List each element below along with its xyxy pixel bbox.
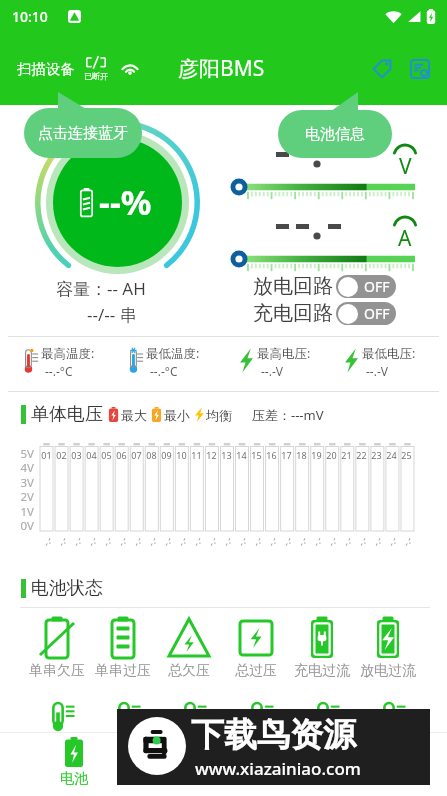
- button[interactable]: 高温保护: [24, 698, 97, 750]
- staticText: 低温保护: [101, 738, 153, 754]
- staticText: 放电过流: [360, 662, 416, 680]
- staticText: 彦阳BMS: [178, 54, 265, 83]
- staticText: 17: [279, 449, 294, 461]
- button[interactable]: 总过压: [223, 613, 289, 679]
- staticText: 1V: [10, 504, 34, 520]
- staticText: -.-: [38, 533, 56, 549]
- staticText: --.-°C: [150, 363, 178, 379]
- staticText: 10:10: [12, 7, 48, 26]
- staticText: 10: [174, 449, 189, 461]
- staticText: 18: [294, 449, 309, 461]
- staticText: -.-: [98, 533, 116, 549]
- staticText: -.-: [218, 533, 236, 549]
- staticText: 最低温度:: [146, 345, 200, 362]
- staticText: V: [399, 152, 412, 181]
- button[interactable]: 芯片错误: [223, 698, 296, 750]
- staticText: 总欠压: [168, 662, 210, 680]
- button[interactable]: 短路保护: [156, 698, 229, 750]
- staticText: 14: [234, 449, 249, 461]
- staticText: -.-: [203, 533, 221, 549]
- staticText: --.-°C: [45, 363, 73, 379]
- staticText: 已断开: [84, 71, 108, 81]
- staticText: -.-: [83, 533, 101, 549]
- staticText: 扫描设备: [17, 60, 75, 78]
- staticText: 芯片错误: [234, 738, 286, 754]
- staticText: 2V: [10, 489, 34, 505]
- staticText: -.-: [143, 533, 161, 549]
- staticText: 02: [54, 449, 69, 461]
- staticText: 09: [159, 449, 174, 461]
- button[interactable]: 扫描设备: [17, 56, 140, 81]
- button[interactable]: 报告: [403, 52, 437, 86]
- button[interactable]: 充电过流: [289, 613, 355, 679]
- staticText: -.-: [368, 533, 386, 549]
- staticText: 21: [339, 449, 354, 461]
- staticText: 电池状态: [31, 577, 103, 600]
- staticText: -.-: [383, 533, 401, 549]
- staticText: 25: [399, 449, 414, 461]
- staticText: 12: [204, 449, 219, 461]
- staticText: 高温保护: [35, 738, 87, 754]
- staticText: 19: [309, 449, 324, 461]
- staticText: 电池: [60, 770, 88, 788]
- button[interactable]: 电池信息: [278, 110, 392, 158]
- button[interactable]: 点击连接蓝牙: [24, 108, 142, 158]
- button[interactable]: 充电回路: [253, 301, 396, 326]
- staticText: -.-: [293, 533, 311, 549]
- staticText: www.xiazainiao.com: [195, 757, 361, 780]
- staticText: -.-: [323, 533, 341, 549]
- staticText: -.-: [128, 533, 146, 549]
- button[interactable]: 总欠压: [156, 613, 222, 679]
- staticText: 最大: [121, 407, 147, 423]
- staticText: 最高电压:: [257, 345, 311, 362]
- staticText: --/-- 串: [87, 303, 137, 326]
- staticText: 4V: [10, 460, 34, 476]
- staticText: -.-: [68, 533, 86, 549]
- staticText: --.-V: [261, 363, 284, 379]
- staticText: 5V: [10, 446, 34, 462]
- staticText: 容量：-- AH: [56, 277, 146, 300]
- staticText: 05: [99, 449, 114, 461]
- staticText: 总过压: [235, 662, 277, 680]
- staticText: -.-: [158, 533, 176, 549]
- staticText: 3V: [10, 475, 34, 491]
- staticText: 最高温度:: [41, 345, 95, 362]
- staticText: 单串欠压: [29, 662, 85, 680]
- staticText: 均衡: [206, 407, 232, 423]
- staticText: OFF: [364, 304, 390, 323]
- staticText: -.-: [113, 533, 131, 549]
- staticText: -.-: [188, 533, 206, 549]
- staticText: 11: [189, 449, 204, 461]
- staticText: 03: [69, 449, 84, 461]
- staticText: 点击连接蓝牙: [38, 124, 128, 143]
- staticText: -.-: [398, 533, 416, 549]
- staticText: 单串过压: [95, 662, 151, 680]
- button[interactable]: 单串过压: [90, 613, 156, 679]
- staticText: -.-: [308, 533, 326, 549]
- button[interactable]: 放电过流: [355, 613, 421, 679]
- staticText: -.-: [263, 533, 281, 549]
- button[interactable]: 互锁中断: [289, 698, 362, 750]
- staticText: --%: [99, 179, 152, 225]
- staticText: -.-: [353, 533, 371, 549]
- staticText: 08: [144, 449, 159, 461]
- staticText: 07: [129, 449, 144, 461]
- button[interactable]: 电池: [37, 737, 111, 788]
- staticText: 最小: [164, 407, 190, 423]
- staticText: --.-V: [366, 363, 389, 379]
- staticText: 充电过流: [294, 662, 350, 680]
- button[interactable]: 单串欠压: [24, 613, 90, 679]
- staticText: 充电回路: [253, 301, 333, 326]
- button[interactable]: 充电异常: [355, 698, 428, 750]
- staticText: 23: [369, 449, 384, 461]
- staticText: 06: [114, 449, 129, 461]
- staticText: 01: [39, 449, 54, 461]
- button[interactable]: 标签: [365, 52, 399, 86]
- staticText: 放电回路: [253, 274, 333, 299]
- staticText: A: [398, 224, 412, 253]
- staticText: 22: [354, 449, 369, 461]
- staticText: -.-: [338, 533, 356, 549]
- button[interactable]: 放电回路: [253, 274, 396, 299]
- button[interactable]: 低温保护: [90, 698, 163, 750]
